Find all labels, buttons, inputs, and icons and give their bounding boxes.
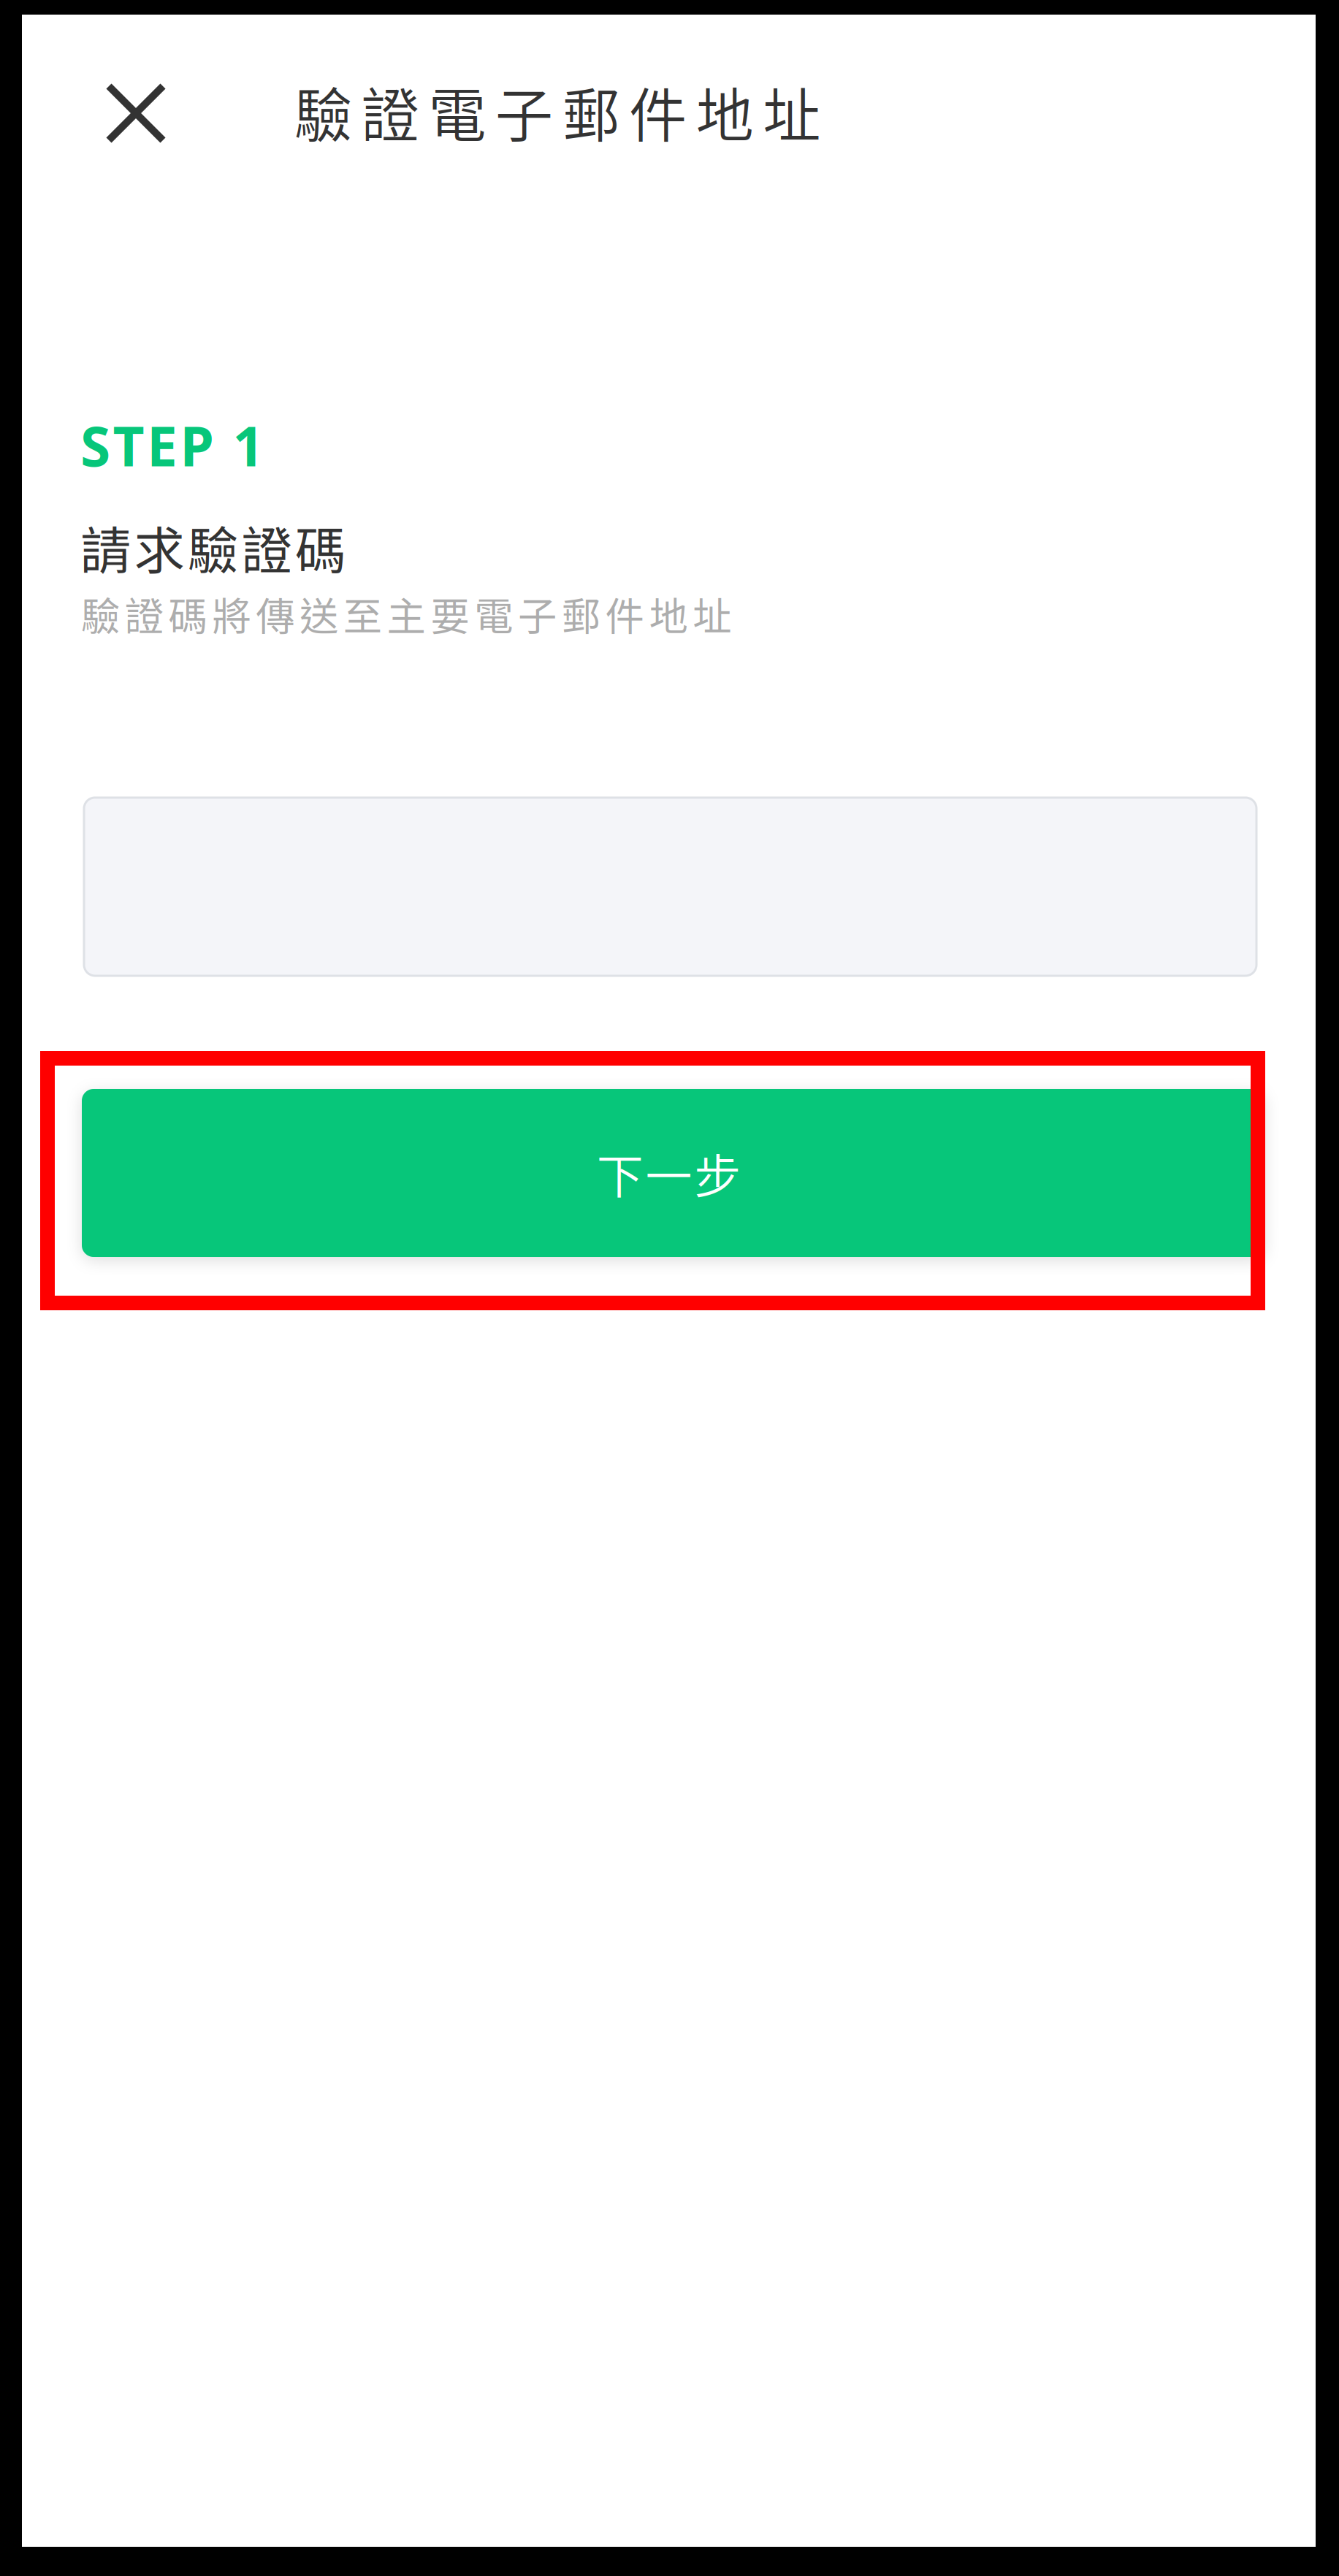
staticText: 驗證電子郵件地址 [294,69,820,153]
button[interactable]: Close [85,63,186,164]
staticText: 驗證碼將傳送至主要電子郵件地址 [81,586,731,642]
button[interactable]: 下一步 [82,1089,1264,1257]
staticText: STEP 1 [80,409,264,481]
staticText: 請求驗證碼 [80,511,346,584]
staticText: 下一步 [597,1139,741,1207]
